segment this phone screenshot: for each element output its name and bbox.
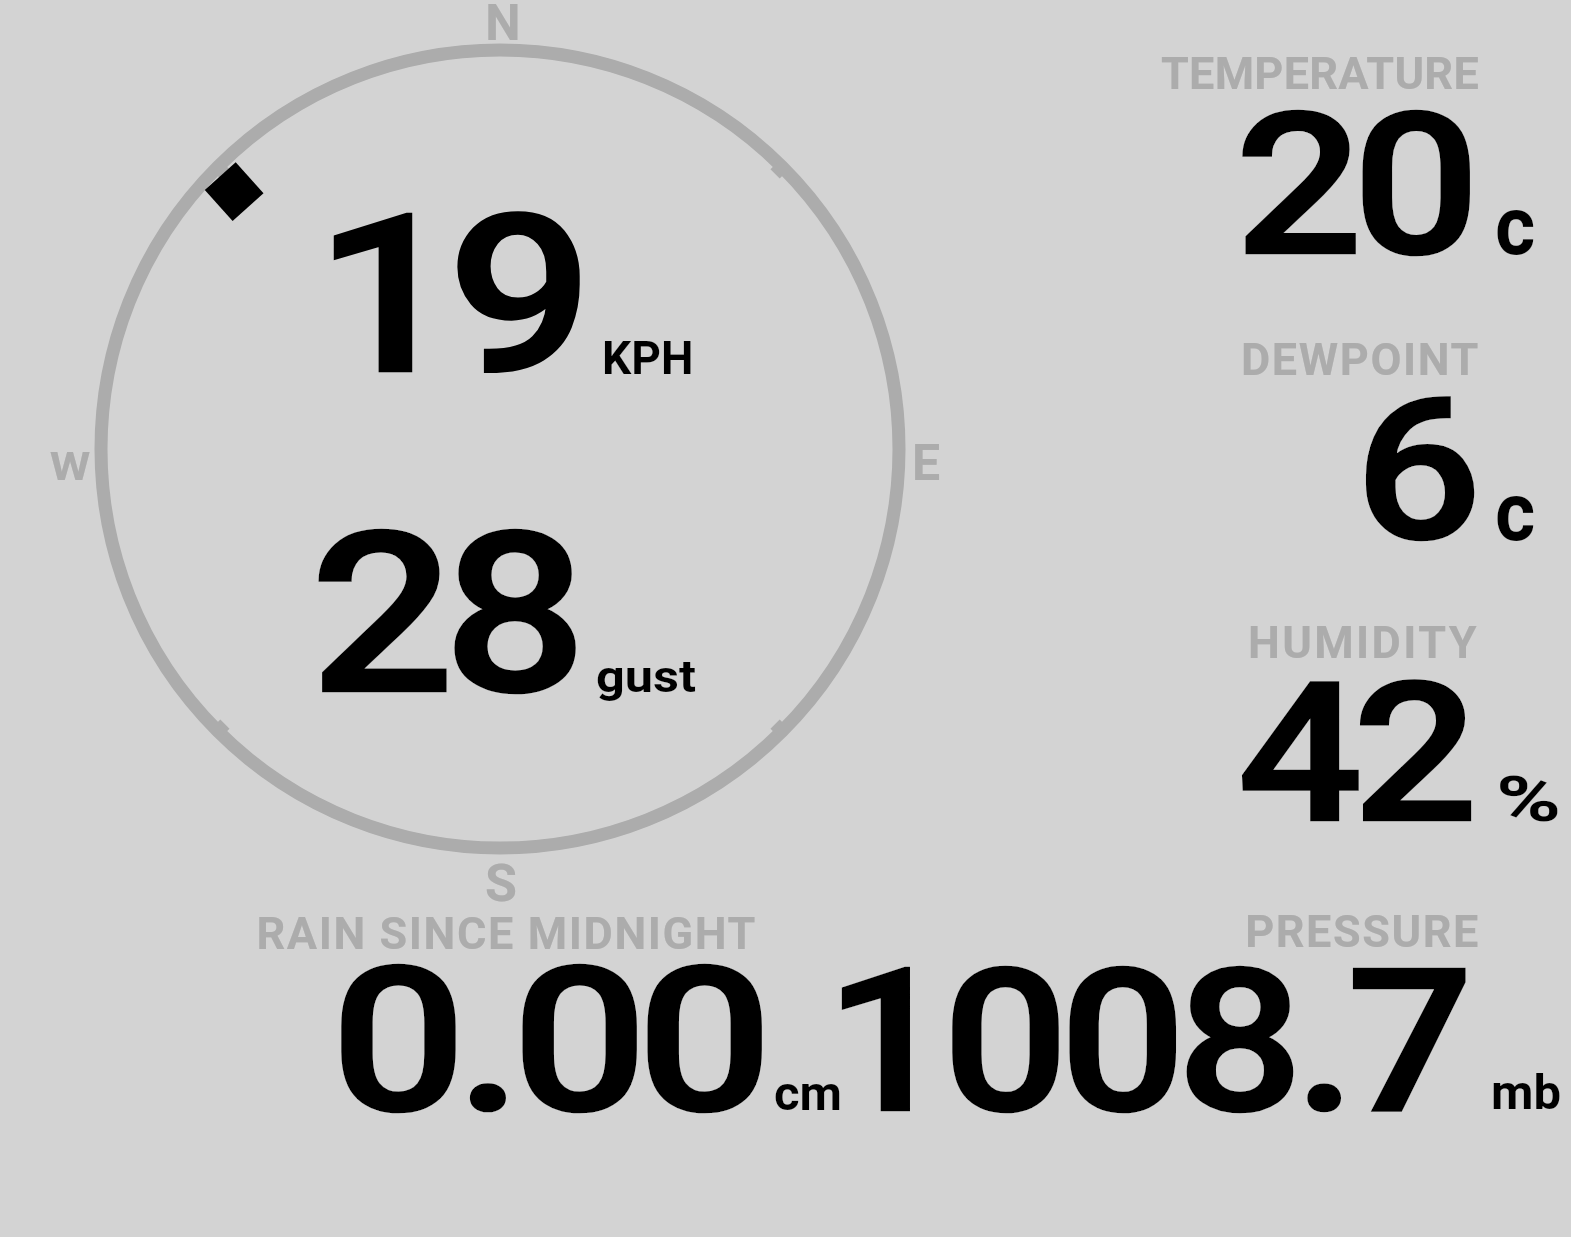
staticText: c [1495,178,1535,274]
staticText: 28 [0,484,576,1237]
staticText: 1008.7 [114,926,1464,1237]
staticText: HUMIDITY [579,616,1479,1237]
staticText: 20 [102,70,1470,1237]
button[interactable]: Rain since midnight 0.00 cm [220,890,840,1130]
staticText: gust [596,650,697,703]
button[interactable]: Humidity 42 percent [1010,585,1571,855]
staticText: 6 [104,355,1472,1237]
staticText: 42 [100,641,1468,1237]
staticText: 42 [100,641,1468,1237]
staticText: 19 [0,167,580,1237]
staticText: 0.00 [0,924,762,1237]
staticText: W [0,445,216,1237]
staticText: 1008.7 [114,926,1464,1237]
staticText: S [381,853,621,1237]
staticText: % [1496,763,1562,837]
staticText: 19 [0,167,580,1237]
staticText: 0.00 [0,924,762,1237]
button[interactable]: Temperature 20 c [1010,20,1571,290]
staticText: 6 [104,355,1472,1237]
staticText: PRESSURE [580,905,1480,1237]
staticText: c [1495,464,1535,560]
staticText: DEWPOINT [580,333,1480,1237]
staticText: KPH [602,331,694,385]
staticText: 28 [0,484,576,1237]
staticText: TEMPERATURE [579,47,1479,1237]
button[interactable]: Dewpoint 6 c [1010,300,1571,570]
button[interactable]: Wind speed 19 KPH, gust 28, direction no… [0,0,1000,900]
staticText: E [806,434,1046,1237]
staticText: N [383,0,623,1231]
staticText: 20 [102,70,1470,1237]
staticText: RAIN SINCE MIDNIGHT [0,907,757,1237]
staticText: cm [774,1065,842,1122]
staticText: mb [1491,1064,1562,1121]
button[interactable]: Pressure 1008.7 mb [845,890,1571,1130]
